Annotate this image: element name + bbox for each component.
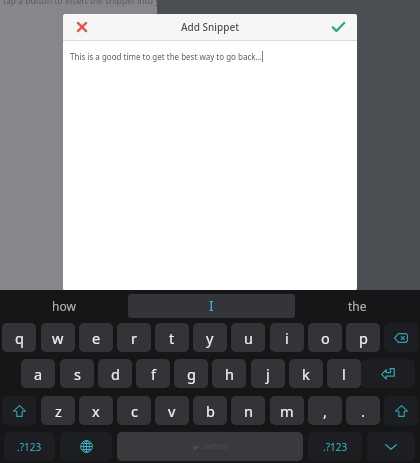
staticText: t xyxy=(169,328,175,348)
button[interactable]: y xyxy=(193,323,227,352)
staticText: I xyxy=(209,297,214,315)
staticText: Tap a button to insert the snippet into … xyxy=(2,0,167,7)
staticText: m xyxy=(280,401,294,421)
button[interactable]: k xyxy=(289,359,323,388)
staticText: .?123 xyxy=(17,440,42,454)
staticText: s xyxy=(74,364,81,384)
staticText: k xyxy=(302,364,310,384)
staticText: c xyxy=(131,401,138,421)
button[interactable] xyxy=(60,432,112,461)
button[interactable]: how xyxy=(0,294,128,318)
button[interactable]: r xyxy=(117,323,151,352)
staticText: f xyxy=(151,364,156,384)
button[interactable]: f xyxy=(136,359,170,388)
staticText: how xyxy=(52,298,76,314)
button[interactable] xyxy=(2,396,36,425)
button[interactable]: m xyxy=(270,396,304,425)
button[interactable]: e xyxy=(79,323,113,352)
button[interactable]: d xyxy=(98,359,132,388)
button[interactable]: h xyxy=(212,359,246,388)
button[interactable]: s xyxy=(60,359,94,388)
button[interactable] xyxy=(327,16,349,38)
staticText: x xyxy=(92,401,100,421)
button[interactable]: b xyxy=(193,396,227,425)
staticText: w xyxy=(52,328,64,348)
button[interactable] xyxy=(384,396,418,425)
button[interactable]: q xyxy=(2,323,36,352)
button[interactable]: i xyxy=(270,323,304,352)
button[interactable]: o xyxy=(308,323,342,352)
staticText: SwiftKey xyxy=(202,442,228,451)
staticText: p xyxy=(359,328,368,348)
button[interactable]: a xyxy=(21,359,55,388)
staticText: i xyxy=(285,328,289,348)
button[interactable] xyxy=(71,16,93,38)
staticText: .?123 xyxy=(323,440,348,454)
staticText: q xyxy=(15,328,24,348)
button[interactable] xyxy=(384,323,418,352)
staticText: l xyxy=(342,364,346,384)
staticText: h xyxy=(225,364,234,384)
button[interactable]: t xyxy=(155,323,189,352)
button[interactable]: n xyxy=(231,396,265,425)
button[interactable]: .?123 xyxy=(308,432,362,461)
button[interactable] xyxy=(367,432,415,461)
button[interactable]: g xyxy=(174,359,208,388)
staticText: o xyxy=(321,328,330,348)
staticText: n xyxy=(244,401,253,421)
button[interactable]: . xyxy=(346,396,380,425)
button[interactable]: I xyxy=(128,294,295,318)
button[interactable] xyxy=(361,359,415,388)
button[interactable]: z xyxy=(41,396,75,425)
staticText: This is a good time to get the best way … xyxy=(70,51,262,62)
staticText: the xyxy=(348,298,367,314)
staticText: r xyxy=(131,328,137,348)
staticText: v xyxy=(168,401,176,421)
staticText: y xyxy=(206,328,214,348)
button[interactable]: the xyxy=(295,294,420,318)
button[interactable]: .?123 xyxy=(4,432,55,461)
button[interactable]: v xyxy=(155,396,189,425)
staticText: a xyxy=(34,364,43,384)
staticText: e xyxy=(92,328,101,348)
staticText: g xyxy=(187,364,196,384)
button[interactable]: l xyxy=(327,359,361,388)
button[interactable]: c xyxy=(117,396,151,425)
staticText: Add Snippet xyxy=(181,20,239,34)
button[interactable]: p xyxy=(346,323,380,352)
staticText: j xyxy=(266,364,270,384)
button[interactable]: j xyxy=(251,359,285,388)
button[interactable]: , xyxy=(308,396,342,425)
staticText: , xyxy=(323,401,327,421)
staticText: u xyxy=(244,328,253,348)
staticText: . xyxy=(361,401,365,421)
staticText: b xyxy=(206,401,215,421)
button[interactable]: x xyxy=(79,396,113,425)
button[interactable]: u xyxy=(231,323,265,352)
staticText: d xyxy=(111,364,120,384)
staticText: z xyxy=(55,401,62,421)
button[interactable]: w xyxy=(41,323,75,352)
